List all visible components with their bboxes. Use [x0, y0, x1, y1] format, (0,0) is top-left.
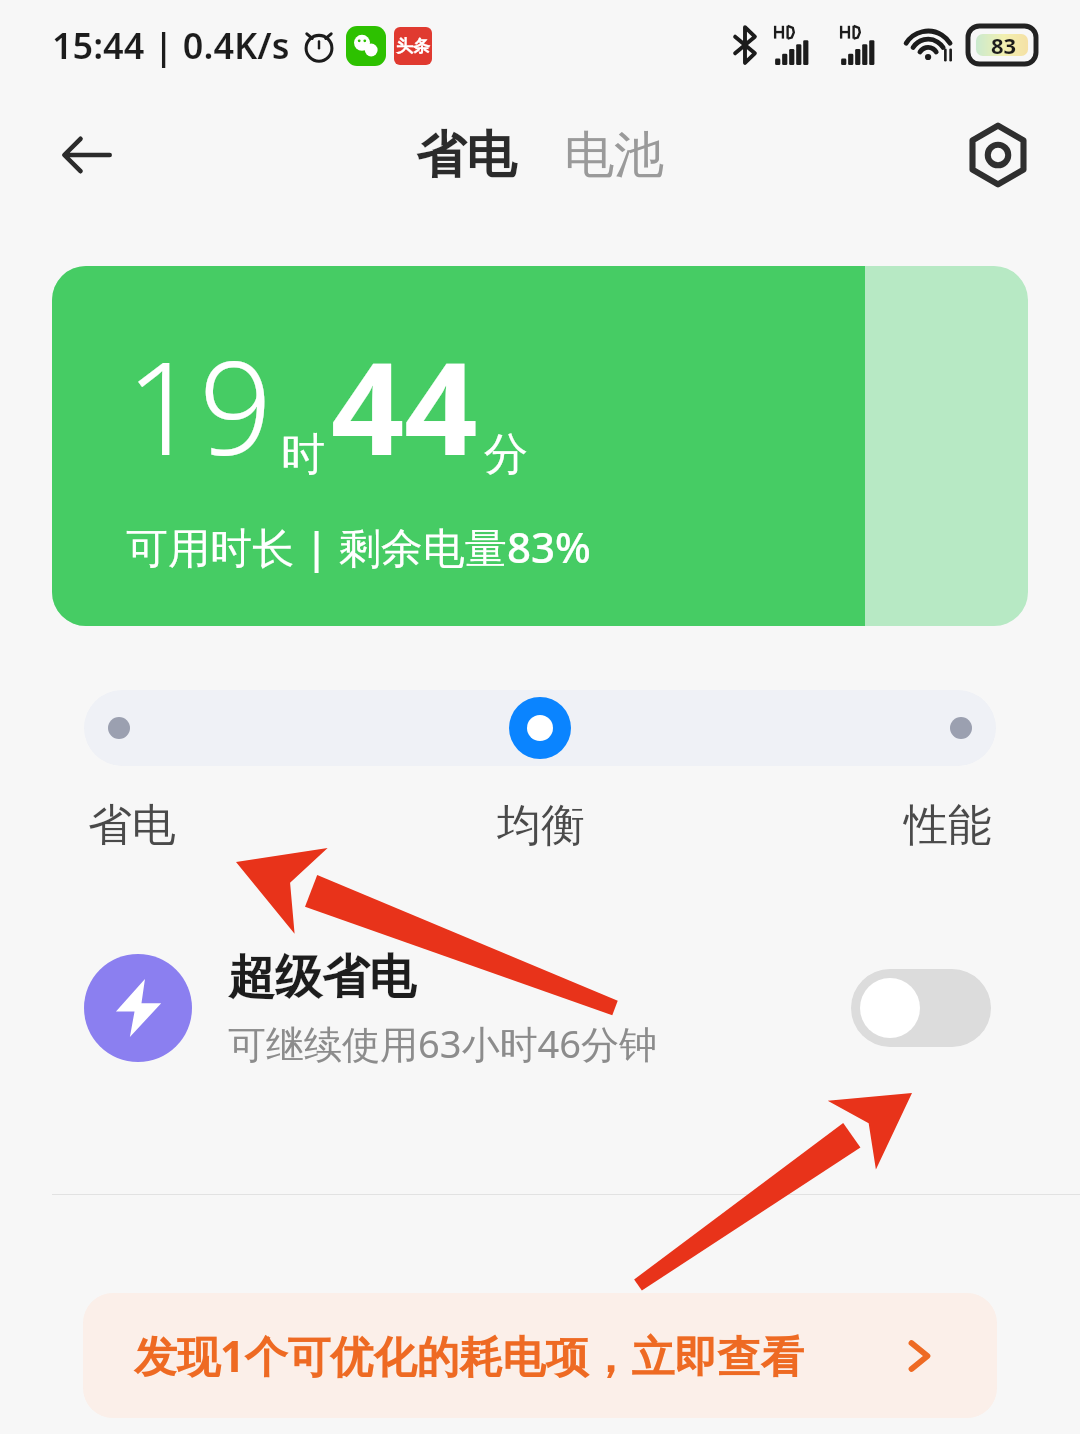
staticText: 电池	[564, 124, 664, 187]
button[interactable]: Super power saving toggle, off	[851, 969, 991, 1047]
staticText: 可继续使用63小时46分钟	[228, 1017, 657, 1069]
staticText: 83	[991, 30, 1017, 60]
staticText: 超级省电	[228, 948, 416, 1007]
button[interactable]: 省电	[416, 124, 516, 187]
staticText: 15:44 | 0.4K/s	[52, 21, 290, 70]
button[interactable]: Back	[52, 120, 122, 190]
button[interactable]: 19	[52, 266, 1028, 626]
staticText: 省电	[416, 124, 516, 187]
button[interactable]: 超级省电	[0, 933, 1080, 1083]
button[interactable]: 电池	[564, 124, 664, 187]
staticText: 19	[126, 318, 273, 492]
staticText: 头条	[396, 36, 430, 57]
staticText: 可用时长 | 剩余电量83%	[126, 518, 591, 575]
button[interactable]: 发现1个可优化的耗电项，立即查看	[83, 1293, 997, 1418]
staticText: 性能	[904, 798, 992, 853]
staticText: 发现1个可优化的耗电项，立即查看	[134, 1326, 804, 1385]
button[interactable]: 性能	[691, 798, 992, 853]
staticText: 均衡	[497, 798, 585, 853]
button[interactable]: 均衡	[390, 798, 691, 853]
staticText: 省电	[88, 798, 176, 853]
button[interactable]: Performance mode slider	[84, 690, 996, 766]
staticText: 分	[484, 427, 528, 482]
button[interactable]: 省电	[88, 798, 390, 853]
staticText: 44	[331, 318, 478, 492]
button[interactable]: Settings	[960, 117, 1036, 193]
staticText: 时	[281, 427, 325, 482]
